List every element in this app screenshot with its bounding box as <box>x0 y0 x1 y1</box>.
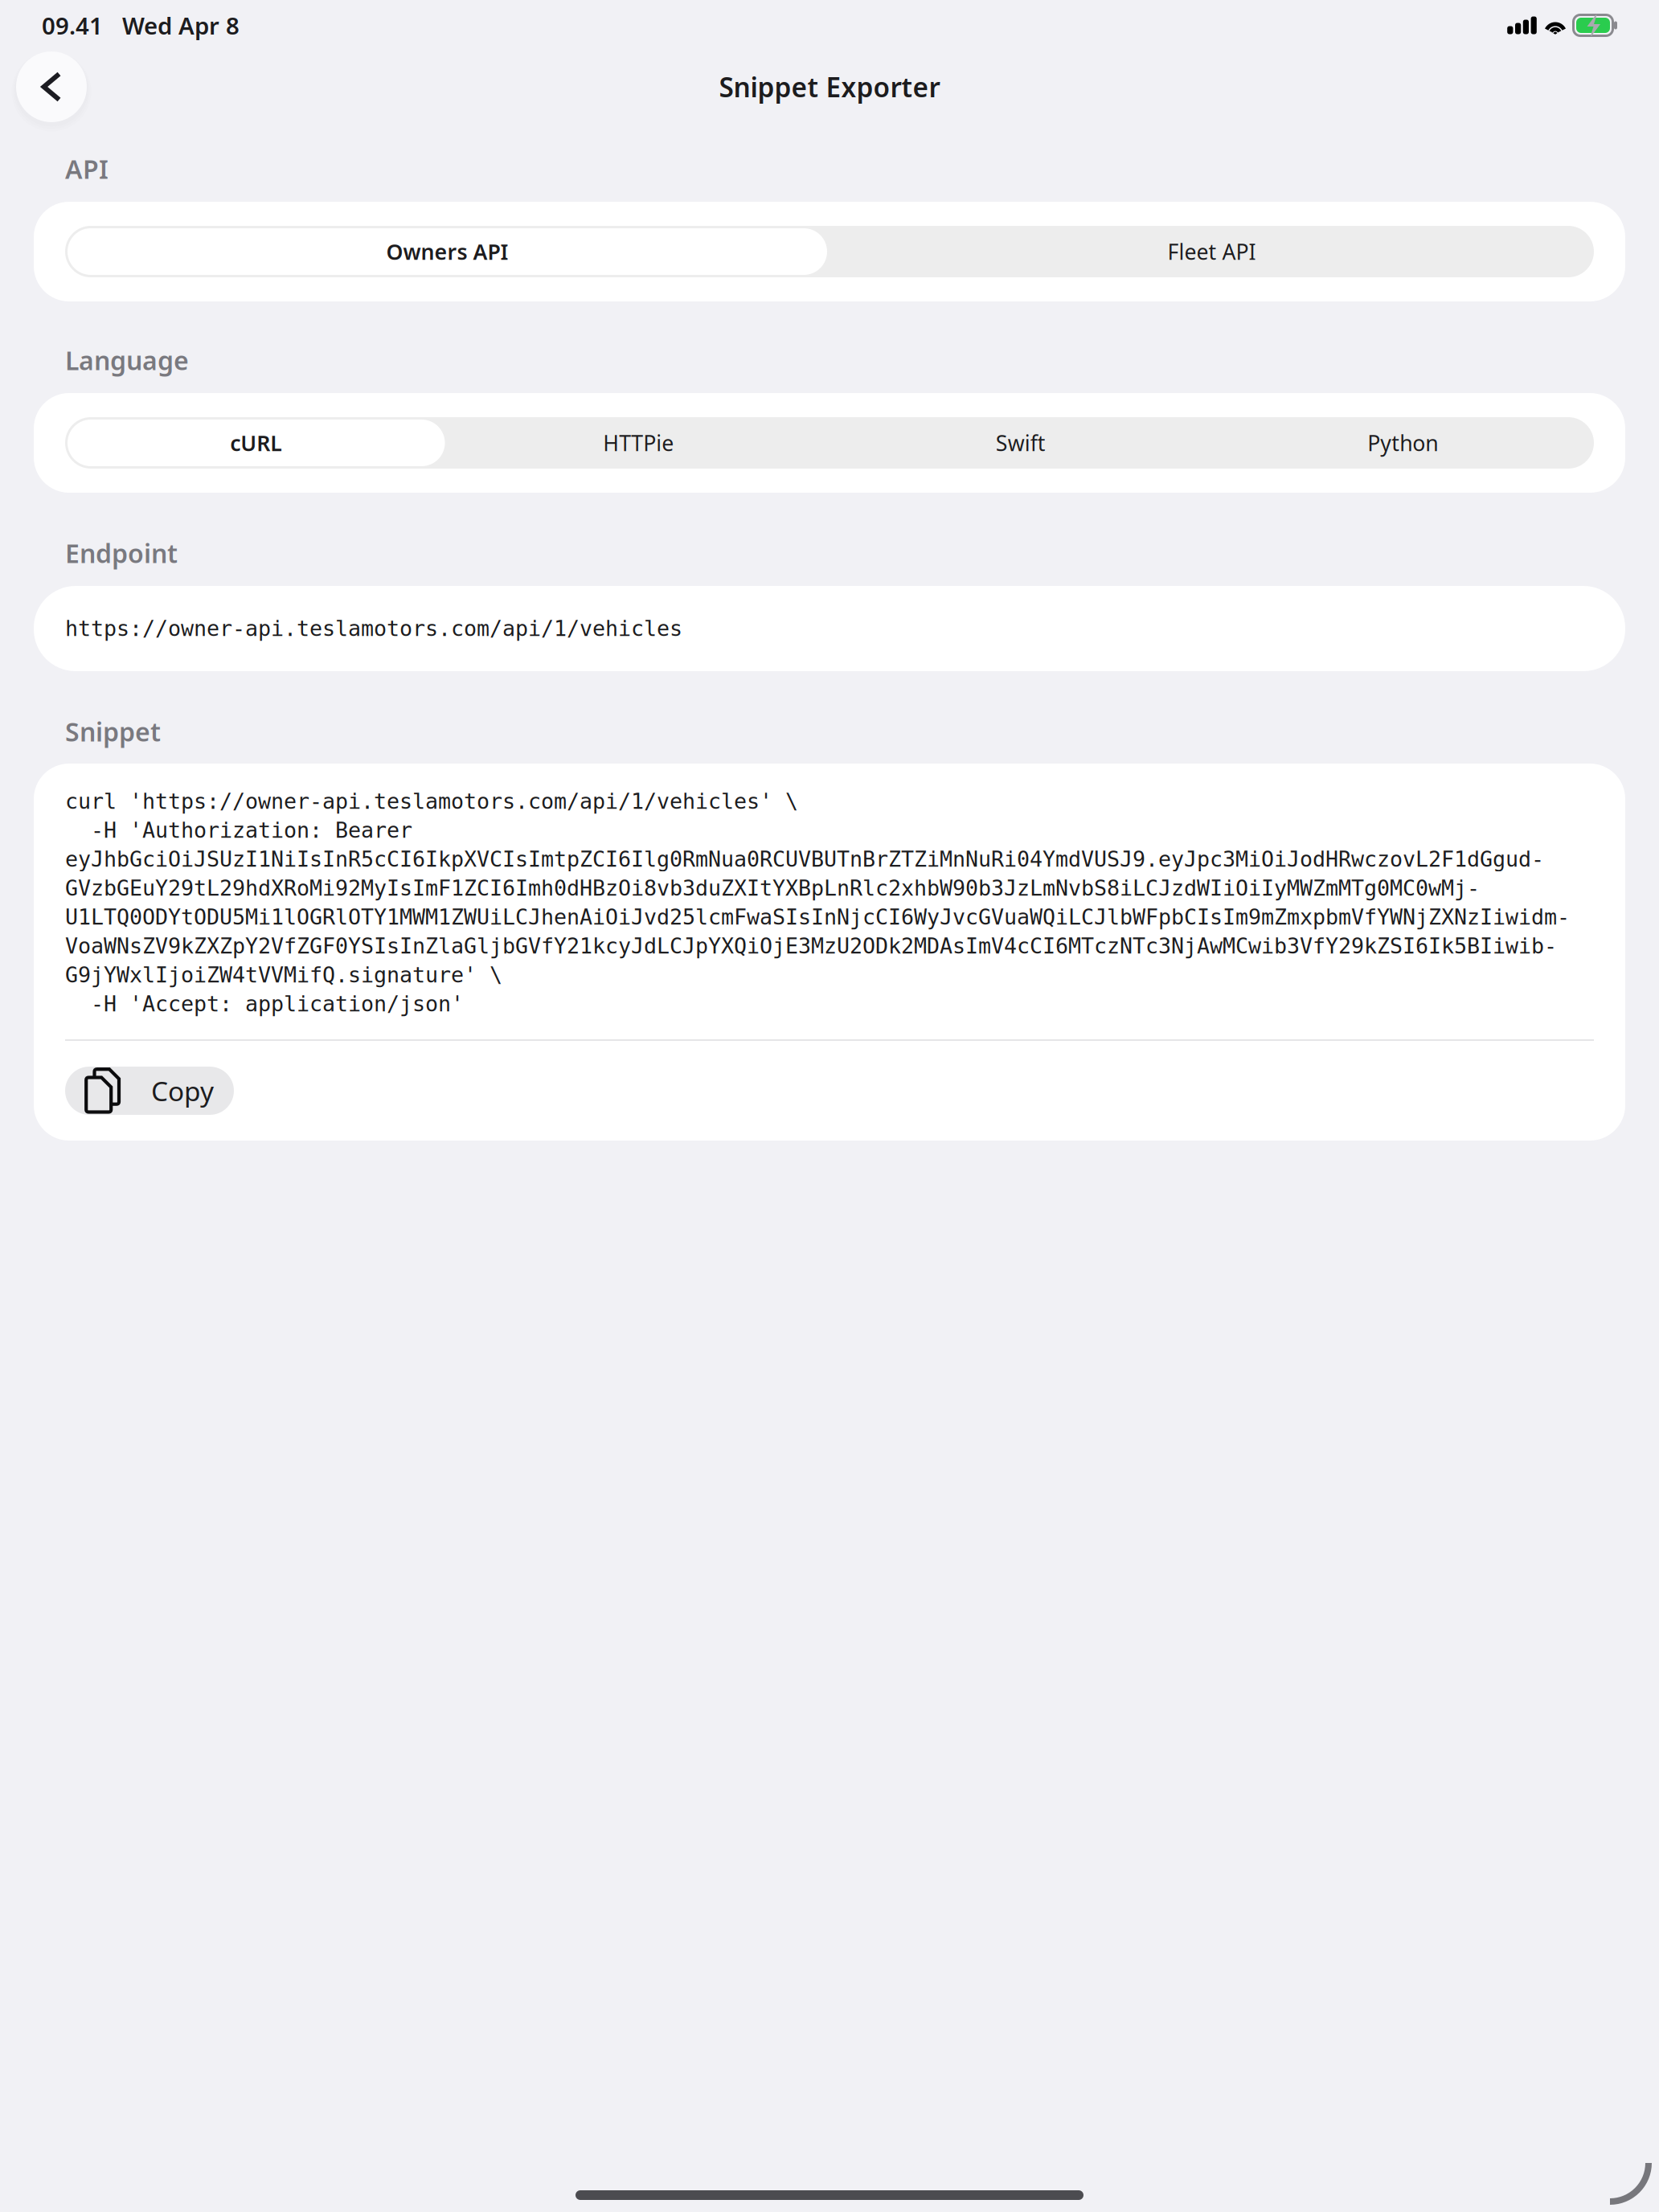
staticText: Language <box>65 343 189 377</box>
staticText: API <box>65 152 109 186</box>
staticText: curl 'https://owner-api.teslamotors.com/… <box>65 789 798 814</box>
staticText: Snippet Exporter <box>719 69 940 105</box>
staticText: Swift <box>996 429 1046 457</box>
button[interactable]: Python <box>1212 417 1594 469</box>
staticText: Endpoint <box>65 536 178 570</box>
staticText: Fleet API <box>1167 237 1256 266</box>
staticText: Copy <box>151 1073 214 1109</box>
staticText: Python <box>1367 429 1438 457</box>
staticText: -H 'Accept: application/json' <box>65 992 464 1016</box>
staticText: VoaWNsZV9kZXZpY2VfZGF0YSIsInZlaGljbGVfY2… <box>65 934 1557 958</box>
staticText: Snippet <box>65 714 161 749</box>
button[interactable]: cURL <box>65 417 447 469</box>
staticText: 09.41 Wed Apr 8 <box>42 10 240 41</box>
staticText: eyJhbGciOiJSUzI1NiIsInR5cCI6IkpXVCIsImtp… <box>65 847 1544 871</box>
button[interactable]: HTTPie <box>447 417 829 469</box>
button[interactable]: Swift <box>829 417 1212 469</box>
staticText: cURL <box>230 429 282 457</box>
button[interactable]: Copy <box>65 1067 234 1115</box>
staticText: HTTPie <box>603 429 674 457</box>
button[interactable]: Owners API <box>65 226 829 277</box>
staticText: G9jYWxlIjoiZW4tVVMifQ.signature' \ <box>65 963 502 987</box>
staticText: -H 'Authorization: Bearer <box>65 818 412 843</box>
staticText: https://owner-api.teslamotors.com/api/1/… <box>65 616 682 641</box>
staticText: Owners API <box>386 237 508 266</box>
staticText: GVzbGEuY29tL29hdXRoMi92MyIsImF1ZCI6Imh0d… <box>65 876 1480 900</box>
button[interactable]: Fleet API <box>829 226 1594 277</box>
button[interactable]: Back <box>13 47 90 127</box>
staticText: U1LTQ0ODYtODU5Mi1lOGRlOTY1MWM1ZWUiLCJhen… <box>65 905 1570 929</box>
